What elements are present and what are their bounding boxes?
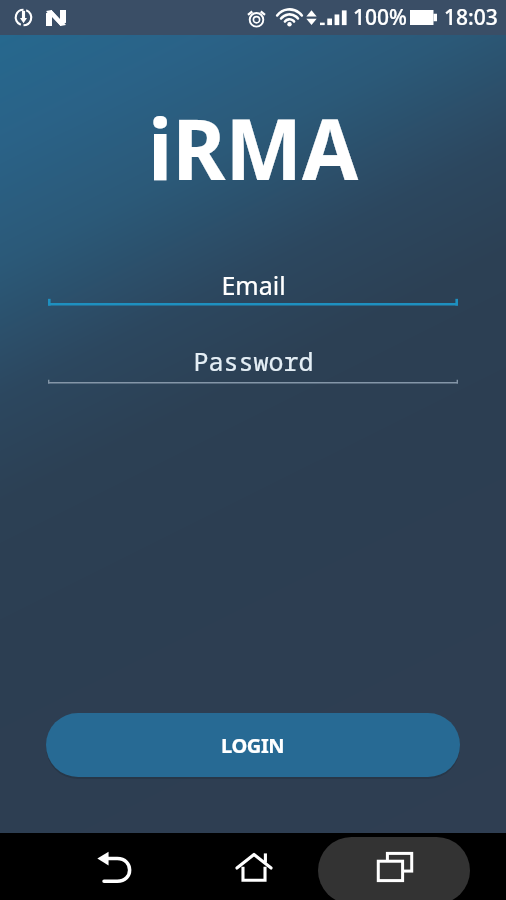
button[interactable]: Back [79,833,149,900]
button[interactable]: LOGIN [46,713,460,777]
staticText: 18:03 [444,3,498,32]
staticText: Password [193,344,314,378]
button[interactable]: Home [219,833,289,900]
button[interactable]: Recent apps [318,837,470,900]
staticText: LOGIN [221,732,285,759]
staticText: iRMA [148,89,359,205]
staticText: 100% [353,3,407,32]
staticText: Email [221,268,286,302]
